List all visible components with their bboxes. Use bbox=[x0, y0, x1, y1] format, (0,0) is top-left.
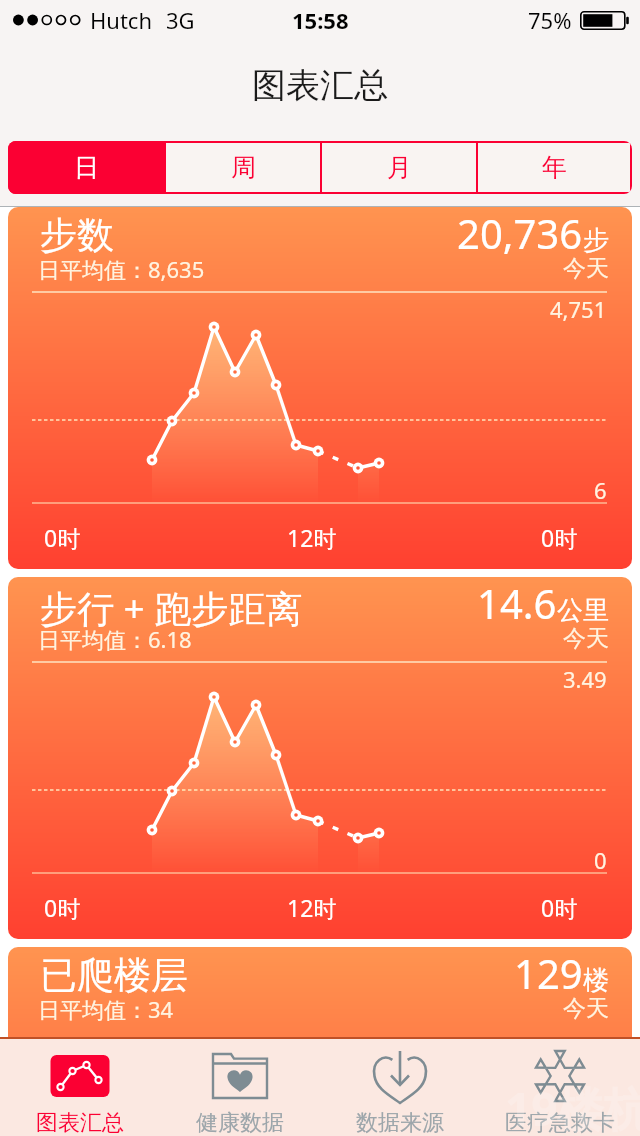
button[interactable]: 数据来源 bbox=[320, 1039, 480, 1136]
staticText: 15:58 bbox=[292, 5, 349, 35]
staticText: 0时 bbox=[541, 892, 578, 923]
staticText: 20,736 bbox=[457, 207, 583, 260]
staticText: 0时 bbox=[541, 522, 578, 553]
other: 数据来源 bbox=[368, 1054, 432, 1098]
other: 图表汇总 bbox=[48, 1054, 112, 1098]
staticText: 公里 bbox=[557, 594, 609, 627]
staticText: 今天 bbox=[563, 254, 609, 283]
staticText: 图表汇总 bbox=[36, 1109, 124, 1136]
button[interactable]: 月 bbox=[322, 143, 476, 192]
staticText: 3G bbox=[166, 5, 195, 35]
button[interactable]: 步行 + 跑步距离 bbox=[8, 577, 632, 939]
other: 医疗急救卡 bbox=[528, 1054, 592, 1098]
staticText: 0时 bbox=[44, 522, 81, 553]
staticText: 日平均值：6.18 bbox=[38, 624, 192, 654]
button[interactable]: 健康数据 bbox=[160, 1039, 320, 1136]
staticText: 楼 bbox=[583, 964, 609, 997]
staticText: 今天 bbox=[563, 624, 609, 653]
other: 健康数据 bbox=[208, 1054, 272, 1098]
staticText: 健康数据 bbox=[196, 1109, 284, 1136]
staticText: 0时 bbox=[44, 892, 81, 923]
staticText: 6 bbox=[594, 475, 607, 505]
staticText: 日平均值：8,635 bbox=[38, 254, 205, 284]
button[interactable]: 周 bbox=[166, 143, 320, 192]
button[interactable]: 步数 bbox=[8, 207, 632, 569]
staticText: Hutch bbox=[90, 5, 152, 35]
staticText: 医疗急救卡 bbox=[505, 1109, 615, 1136]
button[interactable]: 图表汇总 bbox=[0, 1039, 160, 1136]
staticText: 步数 bbox=[40, 212, 114, 259]
staticText: 图表汇总 bbox=[252, 64, 388, 107]
staticText: 75% bbox=[528, 5, 572, 35]
staticText: 4,751 bbox=[550, 294, 607, 324]
staticText: 3.49 bbox=[563, 664, 607, 694]
staticText: 129 bbox=[514, 947, 583, 1000]
staticText: 数据来源 bbox=[356, 1109, 444, 1136]
button[interactable]: 年 bbox=[478, 143, 630, 192]
staticText: 周 bbox=[231, 152, 256, 183]
staticText: 今天 bbox=[563, 994, 609, 1023]
staticText: 19楼杭州 bbox=[505, 1077, 640, 1136]
staticText: 年 bbox=[542, 152, 567, 183]
staticText: 已爬楼层 bbox=[40, 952, 188, 999]
staticText: 日平均值：34 bbox=[38, 994, 174, 1024]
button[interactable]: 日 bbox=[8, 141, 164, 194]
button[interactable]: 医疗急救卡 bbox=[480, 1039, 640, 1136]
staticText: 12时 bbox=[287, 892, 337, 923]
button[interactable]: 已爬楼层 bbox=[8, 947, 632, 1038]
staticText: 0 bbox=[594, 845, 607, 875]
staticText: 12时 bbox=[287, 522, 337, 553]
staticText: 步 bbox=[583, 224, 609, 257]
staticText: 14.6 bbox=[477, 577, 557, 630]
staticText: 日 bbox=[74, 152, 99, 183]
staticText: 步行 + 跑步距离 bbox=[40, 582, 303, 633]
staticText: 月 bbox=[387, 152, 412, 183]
